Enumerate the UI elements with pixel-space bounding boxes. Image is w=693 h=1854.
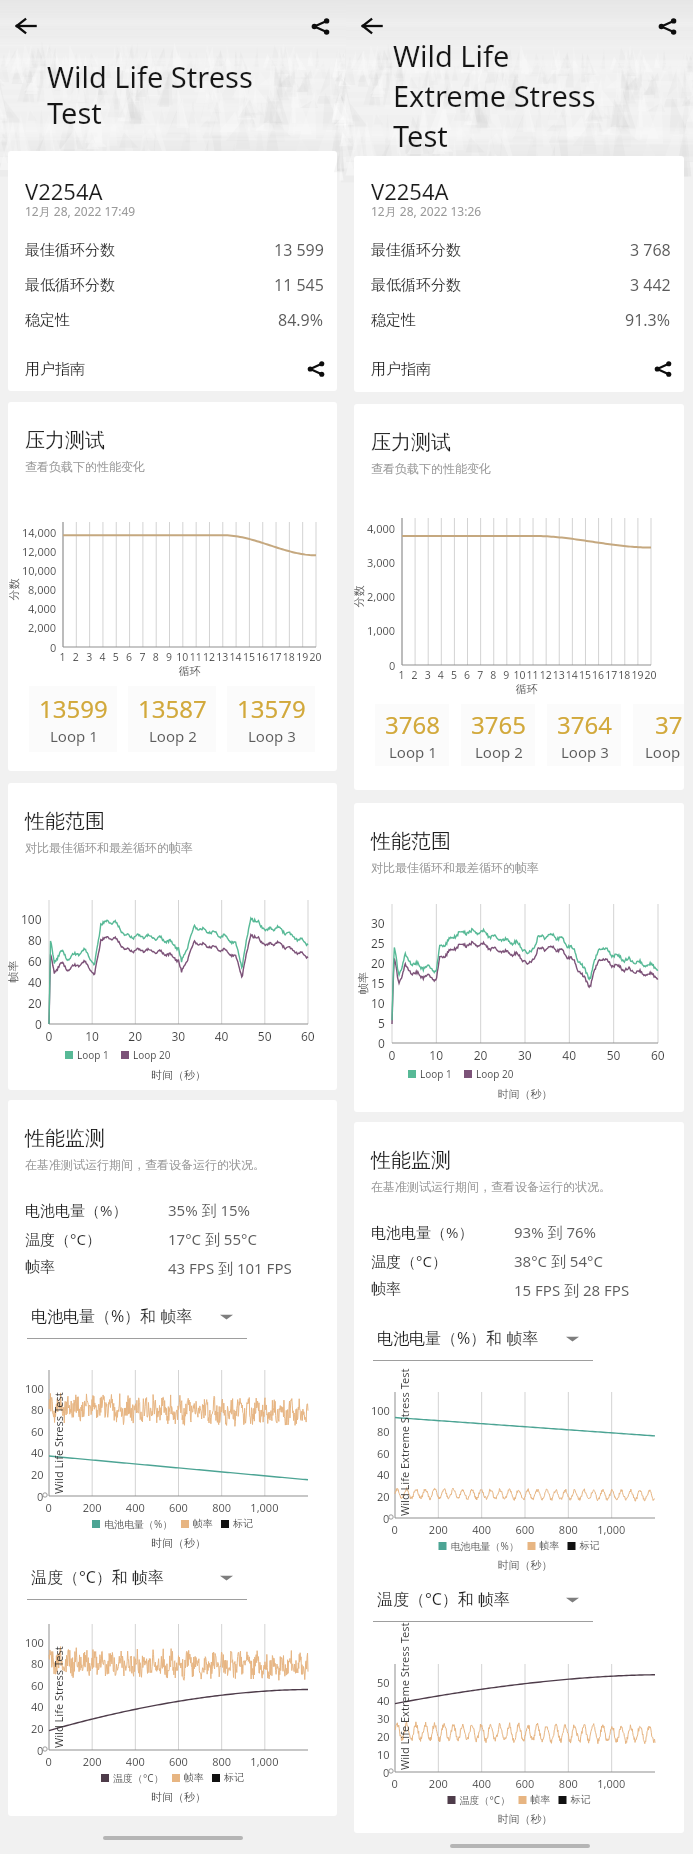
staticText: 在基准测试运行期间，查看设备运行的状况。 xyxy=(25,1157,265,1172)
button[interactable]: 13587 xyxy=(128,686,216,752)
staticText: 17°C 到 55°C xyxy=(168,1229,257,1249)
staticText: 性能监测 xyxy=(371,1148,451,1173)
staticText: Loop 4 xyxy=(645,742,684,762)
button[interactable]: 用户指南 xyxy=(371,352,671,386)
staticText: Wild Life Stress Test xyxy=(47,57,253,133)
staticText: 13579 xyxy=(237,692,306,725)
staticText: 3 768 xyxy=(630,239,671,261)
staticText: 最佳循环分数 xyxy=(371,241,461,260)
staticText: 最低循环分数 xyxy=(25,276,115,295)
staticText: 最低循环分数 xyxy=(371,276,461,295)
staticText: 13 599 xyxy=(274,239,324,261)
button[interactable]: 温度（°C）和 帧率 xyxy=(27,1562,255,1592)
button[interactable]: 电池电量（%）和 帧率 xyxy=(27,1301,255,1331)
staticText: 温度（°C） xyxy=(371,1251,447,1271)
button[interactable]: Back xyxy=(0,0,52,52)
staticText: 13587 xyxy=(138,692,207,725)
staticText: 温度（°C） xyxy=(25,1229,101,1249)
staticText: 38°C 到 54°C xyxy=(514,1251,603,1271)
button[interactable]: 电池电量（%）和 帧率 xyxy=(373,1323,601,1353)
staticText: 帧率 xyxy=(371,1280,401,1299)
staticText: 压力测试 xyxy=(371,430,451,455)
button[interactable]: 3764 xyxy=(547,704,621,766)
staticText: 93% 到 76% xyxy=(514,1222,597,1242)
staticText: 在基准测试运行期间，查看设备运行的状况。 xyxy=(371,1179,611,1194)
button[interactable]: 3765 xyxy=(461,704,535,766)
staticText: 用户指南 xyxy=(25,360,85,379)
staticText: 性能监测 xyxy=(25,1126,105,1151)
staticText: 查看负载下的性能变化 xyxy=(371,461,491,476)
button[interactable]: 13599 xyxy=(29,686,117,752)
button[interactable]: Share xyxy=(641,0,693,52)
staticText: Loop 3 xyxy=(248,726,296,746)
staticText: V2254A xyxy=(25,176,103,206)
staticText: 对比最佳循环和最差循环的帧率 xyxy=(25,840,193,855)
staticText: 稳定性 xyxy=(371,311,416,330)
staticText: 35% 到 15% xyxy=(168,1200,251,1220)
staticText: Loop 2 xyxy=(475,742,523,762)
staticText: 3765 xyxy=(471,708,526,741)
staticText: 91.3% xyxy=(625,309,671,331)
staticText: 3 442 xyxy=(630,274,671,296)
staticText: 温度（°C）和 帧率 xyxy=(31,1566,165,1588)
button[interactable]: 13579 xyxy=(227,686,315,752)
staticText: 性能范围 xyxy=(25,809,105,834)
staticText: 帧率 xyxy=(25,1258,55,1277)
staticText: 12月 28, 2022 13:26 xyxy=(371,203,482,219)
staticText: Loop 3 xyxy=(561,742,609,762)
button[interactable]: 37 xyxy=(633,704,684,766)
staticText: 43 FPS 到 101 FPS xyxy=(168,1258,292,1278)
staticText: 电池电量（%）和 帧率 xyxy=(377,1327,539,1349)
staticText: 电池电量（%）和 帧率 xyxy=(31,1305,193,1327)
staticText: 最佳循环分数 xyxy=(25,241,115,260)
staticText: 11 545 xyxy=(274,274,324,296)
staticText: Loop 1 xyxy=(389,742,437,762)
button[interactable]: 3768 xyxy=(375,704,449,766)
staticText: 压力测试 xyxy=(25,428,105,453)
button[interactable]: Share xyxy=(294,0,346,52)
staticText: 37 xyxy=(655,708,683,741)
staticText: Loop 1 xyxy=(50,726,98,746)
staticText: 15 FPS 到 28 FPS xyxy=(514,1280,630,1300)
staticText: 用户指南 xyxy=(371,360,431,379)
staticText: V2254A xyxy=(371,176,449,206)
staticText: 3764 xyxy=(557,708,612,741)
staticText: 3768 xyxy=(385,708,440,741)
staticText: 84.9% xyxy=(278,309,324,331)
staticText: 温度（°C）和 帧率 xyxy=(377,1588,511,1610)
button[interactable]: 用户指南 xyxy=(25,352,324,386)
staticText: 12月 28, 2022 17:49 xyxy=(25,203,136,219)
staticText: Wild Life Extreme Stress Test xyxy=(393,36,596,156)
staticText: 电池电量（%） xyxy=(25,1200,128,1220)
staticText: 电池电量（%） xyxy=(371,1222,474,1242)
button[interactable]: Back xyxy=(346,0,398,52)
staticText: 13599 xyxy=(39,692,108,725)
staticText: Loop 2 xyxy=(149,726,197,746)
staticText: 稳定性 xyxy=(25,311,70,330)
button[interactable]: 温度（°C）和 帧率 xyxy=(373,1584,601,1614)
staticText: 性能范围 xyxy=(371,829,451,854)
staticText: 查看负载下的性能变化 xyxy=(25,459,145,474)
staticText: 对比最佳循环和最差循环的帧率 xyxy=(371,860,539,875)
